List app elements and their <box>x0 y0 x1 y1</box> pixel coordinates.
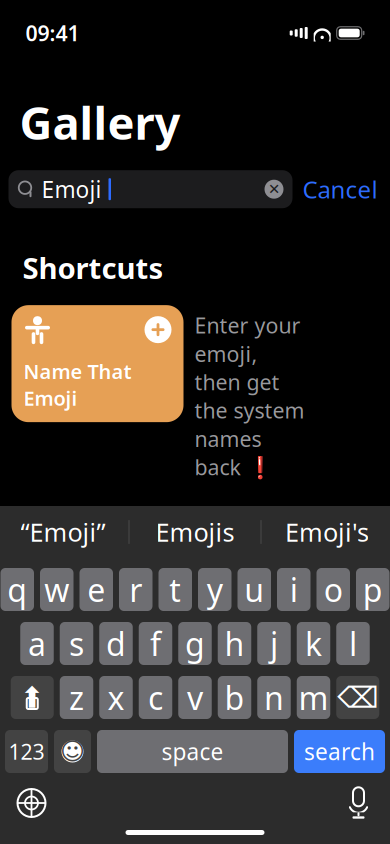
button[interactable]: f <box>139 622 172 665</box>
button[interactable]: e <box>79 568 113 611</box>
staticText: ☺ <box>60 738 85 765</box>
button[interactable]: g <box>178 622 212 665</box>
staticText: Emojis <box>155 515 234 549</box>
staticText: a <box>28 622 46 665</box>
staticText: m <box>298 676 328 719</box>
button[interactable]: Shift <box>11 676 54 719</box>
staticText: Gallery <box>19 92 180 152</box>
staticText: d <box>106 622 126 665</box>
button[interactable]: 123 <box>5 730 48 773</box>
button[interactable]: u <box>237 568 271 611</box>
button[interactable]: z <box>60 676 93 719</box>
staticText: p <box>363 568 383 611</box>
staticText: l <box>349 622 357 665</box>
staticText: w <box>44 568 69 611</box>
staticText: u <box>244 568 264 611</box>
button[interactable]: w <box>40 568 73 611</box>
staticText: c <box>148 676 163 719</box>
button[interactable]: l <box>336 622 370 665</box>
button[interactable]: d <box>99 622 133 665</box>
staticText: i <box>290 568 298 611</box>
button[interactable]: Emojis <box>129 506 260 558</box>
button[interactable]: q <box>0 568 34 611</box>
button[interactable]: a <box>20 622 54 665</box>
staticText: z <box>69 676 84 719</box>
staticText: ⬆ <box>20 681 45 714</box>
staticText: Name That Emoji <box>23 358 131 411</box>
button[interactable]: c <box>139 676 172 719</box>
button[interactable]: p <box>356 568 389 611</box>
staticText: Emoji's <box>285 515 369 549</box>
button[interactable]: k <box>297 622 330 665</box>
staticText: e <box>87 568 105 611</box>
staticText: j <box>270 622 278 665</box>
button[interactable]: h <box>218 622 251 665</box>
staticText: t <box>169 568 181 611</box>
staticText: r <box>129 568 142 611</box>
staticText: v <box>187 676 203 719</box>
staticText: 09:41 <box>25 19 79 47</box>
button[interactable]: y <box>198 568 231 611</box>
staticText: b <box>224 676 244 719</box>
staticText: space <box>161 736 223 766</box>
button[interactable]: x <box>99 676 133 719</box>
button[interactable]: i <box>277 568 310 611</box>
staticText: Cancel <box>302 173 377 205</box>
button[interactable]: s <box>60 622 93 665</box>
staticText: “Emoji” <box>20 515 105 549</box>
staticText: Enter your emoji, then get the system na… <box>194 311 304 481</box>
button[interactable]: Cancel <box>302 173 377 205</box>
staticText: x <box>107 676 124 719</box>
button[interactable]: b <box>218 676 251 719</box>
button[interactable]: r <box>119 568 152 611</box>
button[interactable]: Emoji keyboard <box>54 730 91 773</box>
staticText: k <box>305 622 322 665</box>
button[interactable]: j <box>257 622 291 665</box>
button[interactable]: space <box>97 730 288 773</box>
staticText: g <box>185 622 205 665</box>
staticText: q <box>7 568 27 611</box>
staticText: search <box>304 736 375 766</box>
staticText: o <box>324 568 343 611</box>
button[interactable]: t <box>158 568 192 611</box>
staticText: s <box>69 622 84 665</box>
button[interactable]: o <box>316 568 350 611</box>
staticText: y <box>207 568 223 611</box>
button[interactable]: Delete <box>336 676 379 719</box>
button[interactable]: Name That Emoji <box>11 305 183 422</box>
button[interactable]: “Emoji” <box>0 506 128 558</box>
button[interactable]: n <box>257 676 291 719</box>
staticText: h <box>224 622 244 665</box>
staticText: Shortcuts <box>22 248 163 287</box>
button[interactable]: Next keyboard <box>9 781 53 825</box>
button[interactable]: m <box>297 676 330 719</box>
button[interactable]: search <box>294 730 385 773</box>
staticText: 123 <box>8 737 44 766</box>
staticText: f <box>150 622 161 665</box>
staticText: n <box>264 676 284 719</box>
staticText: ✕ <box>268 181 280 197</box>
button[interactable]: Clear text <box>264 180 283 199</box>
staticText: ⌫ <box>337 681 378 714</box>
staticText: Emoji <box>41 174 101 204</box>
button[interactable]: Dictation <box>336 781 380 825</box>
button[interactable]: Emoji's <box>261 506 390 558</box>
button[interactable]: v <box>178 676 212 719</box>
